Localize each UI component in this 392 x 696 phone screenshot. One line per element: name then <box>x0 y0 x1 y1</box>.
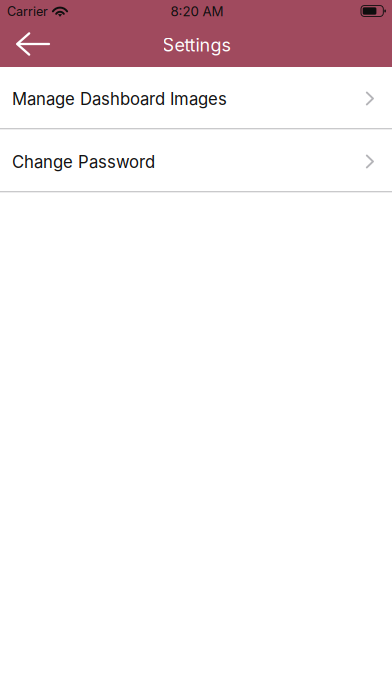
button[interactable]: Back <box>5 21 61 67</box>
button[interactable]: Change Password <box>0 130 392 193</box>
staticText: Carrier <box>7 4 48 19</box>
staticText: 8:20 AM <box>170 3 223 19</box>
button[interactable]: Manage Dashboard Images <box>0 67 392 130</box>
staticText: Manage Dashboard Images <box>12 89 227 109</box>
staticText: Change Password <box>12 152 155 172</box>
staticText: Settings <box>162 34 231 56</box>
